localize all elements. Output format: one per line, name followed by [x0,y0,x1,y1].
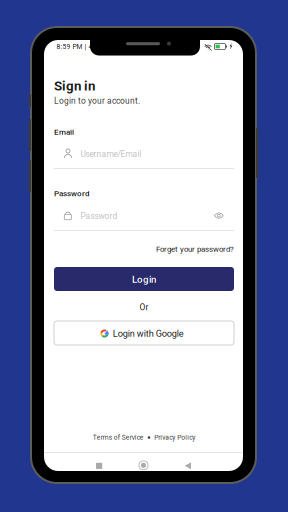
staticText: Password [54,189,90,198]
staticText: 8:59 PM | 4 [56,43,92,51]
button[interactable]: Login with Google [54,321,234,345]
button[interactable]: Show password [214,211,224,220]
staticText: Or [139,303,148,312]
button[interactable]: Back [185,462,191,469]
button[interactable]: Privacy Policy [154,434,195,441]
staticText: Forget your password? [156,244,234,254]
button[interactable]: Login [54,267,234,291]
staticText: Login with Google [113,328,184,339]
staticText: Privacy Policy [154,434,195,441]
button[interactable]: Forget your password? [130,244,234,254]
staticText: Sign in [54,78,95,94]
button[interactable]: Home [139,461,148,470]
button[interactable]: Terms of Service [93,434,144,441]
staticText: Password [80,211,117,221]
staticText: Login [132,274,156,285]
staticText: Username/Email [80,149,141,159]
staticText: Login to your account. [54,96,140,106]
staticText: Terms of Service [93,434,144,441]
staticText: Email [54,127,74,137]
